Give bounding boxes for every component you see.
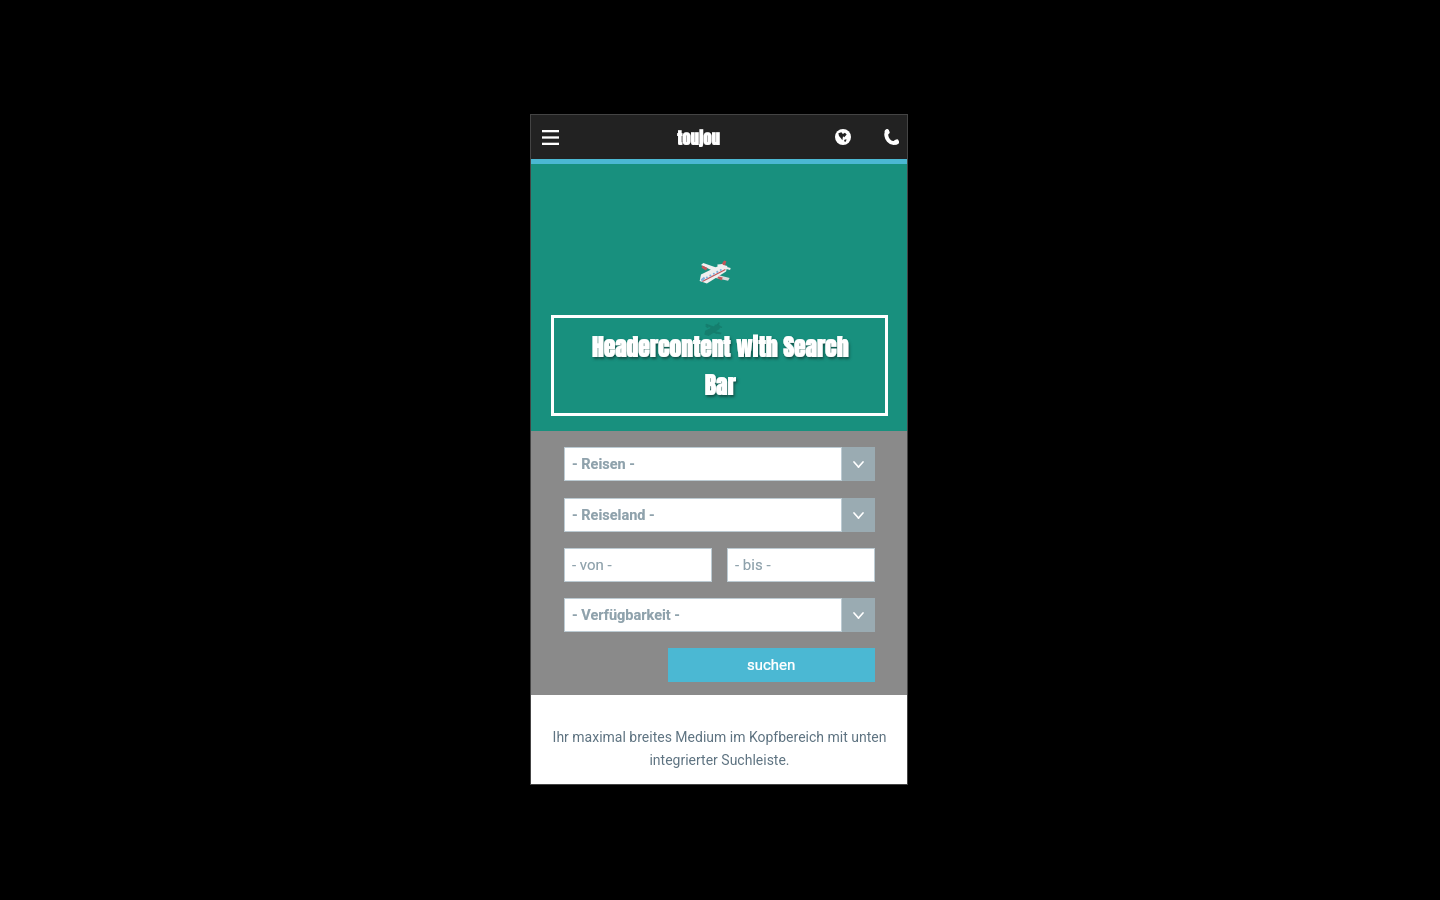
- button[interactable]: - Reiseland -: [564, 498, 875, 532]
- staticText: - von -: [572, 556, 612, 574]
- staticText: - Reiseland -: [572, 507, 655, 524]
- staticText: toujou: [677, 126, 720, 150]
- button[interactable]: - Verfügbarkeit -: [564, 598, 875, 632]
- staticText: - Reisen -: [572, 456, 635, 473]
- staticText: Ihr maximal breites Medium im Kopfbereic…: [552, 729, 887, 768]
- staticText: Headercontent with Search Bar: [582, 330, 858, 402]
- button[interactable]: Call: [875, 121, 907, 153]
- button[interactable]: Language: [827, 121, 859, 153]
- button[interactable]: Menu: [535, 122, 565, 152]
- button[interactable]: - von -: [564, 548, 712, 582]
- button[interactable]: suchen: [668, 648, 875, 682]
- staticText: - Verfügbarkeit -: [572, 607, 681, 624]
- staticText: suchen: [747, 656, 796, 674]
- button[interactable]: - bis -: [727, 548, 875, 582]
- staticText: - bis -: [735, 556, 771, 574]
- button[interactable]: - Reisen -: [564, 447, 875, 481]
